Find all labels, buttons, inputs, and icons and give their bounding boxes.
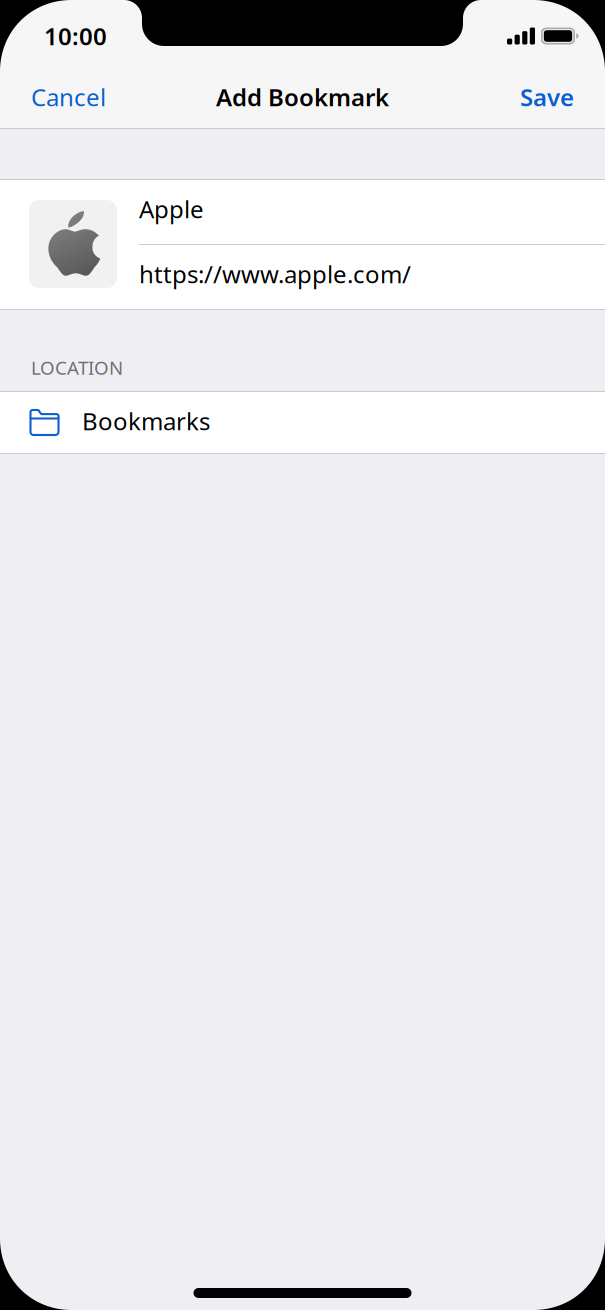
staticText: https://www.apple.com/ bbox=[139, 258, 411, 290]
button[interactable]: https://www.apple.com/ bbox=[139, 245, 605, 309]
button[interactable]: Bookmarks bbox=[0, 392, 605, 453]
button[interactable]: Apple bbox=[139, 180, 605, 244]
staticText: 10:00 bbox=[44, 20, 107, 52]
staticText: LOCATION bbox=[31, 355, 123, 380]
button[interactable]: Cancel bbox=[31, 65, 106, 125]
staticText: Add Bookmark bbox=[216, 81, 389, 113]
staticText: Bookmarks bbox=[82, 405, 210, 437]
staticText: Save bbox=[520, 81, 574, 113]
button[interactable]: Save bbox=[520, 65, 574, 125]
staticText: Apple bbox=[139, 193, 204, 225]
staticText: Cancel bbox=[31, 81, 106, 113]
